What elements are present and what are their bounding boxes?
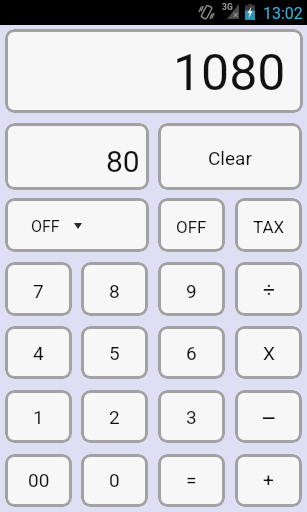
button[interactable]: Rounding mode OFF: [5, 198, 149, 252]
staticText: 0: [109, 469, 120, 491]
staticText: 5: [109, 342, 120, 364]
button[interactable]: 3: [158, 390, 225, 443]
button[interactable]: 0: [81, 454, 148, 507]
button[interactable]: OFF: [158, 198, 225, 252]
staticText: 00: [28, 469, 50, 491]
button[interactable]: Divide: [235, 262, 302, 316]
button[interactable]: TAX: [235, 198, 302, 252]
button[interactable]: 00: [5, 454, 72, 507]
button[interactable]: Clear: [158, 123, 302, 190]
button[interactable]: Equals: [158, 454, 225, 507]
button[interactable]: Entry 80: [5, 123, 149, 190]
button[interactable]: 9: [158, 262, 225, 316]
staticText: Clear: [208, 147, 252, 169]
button[interactable]: 5: [81, 326, 148, 379]
staticText: OFF: [31, 217, 60, 236]
staticText: 3: [186, 406, 197, 428]
button[interactable]: 2: [81, 390, 148, 443]
staticText: 7: [33, 280, 44, 302]
button[interactable]: Subtract: [235, 390, 302, 443]
staticText: ÷: [263, 278, 275, 303]
staticText: 80: [106, 144, 140, 179]
staticText: –: [261, 405, 277, 433]
button[interactable]: 7: [5, 262, 72, 316]
staticText: X: [263, 342, 275, 364]
staticText: 4: [33, 342, 44, 364]
button[interactable]: 6: [158, 326, 225, 379]
button[interactable]: Add: [235, 454, 302, 507]
staticText: OFF: [176, 217, 207, 237]
staticText: 8: [109, 280, 120, 302]
other: Battery charging: [245, 4, 255, 20]
staticText: =: [186, 469, 197, 491]
staticText: 1: [33, 406, 44, 428]
button[interactable]: Result display 1080: [5, 29, 303, 113]
button[interactable]: 8: [81, 262, 148, 316]
staticText: 3G: [222, 2, 233, 12]
staticText: 1080: [173, 44, 286, 103]
staticText: 13:02: [263, 4, 303, 23]
staticText: 9: [186, 280, 197, 302]
staticText: 2: [109, 406, 120, 428]
staticText: TAX: [253, 217, 285, 237]
other: No signal: [227, 4, 239, 19]
button[interactable]: Multiply: [235, 326, 302, 379]
other: Vibrate mode: [199, 4, 214, 20]
button[interactable]: 4: [5, 326, 72, 379]
staticText: 6: [186, 342, 197, 364]
button[interactable]: 1: [5, 390, 72, 443]
staticText: +: [263, 469, 274, 491]
